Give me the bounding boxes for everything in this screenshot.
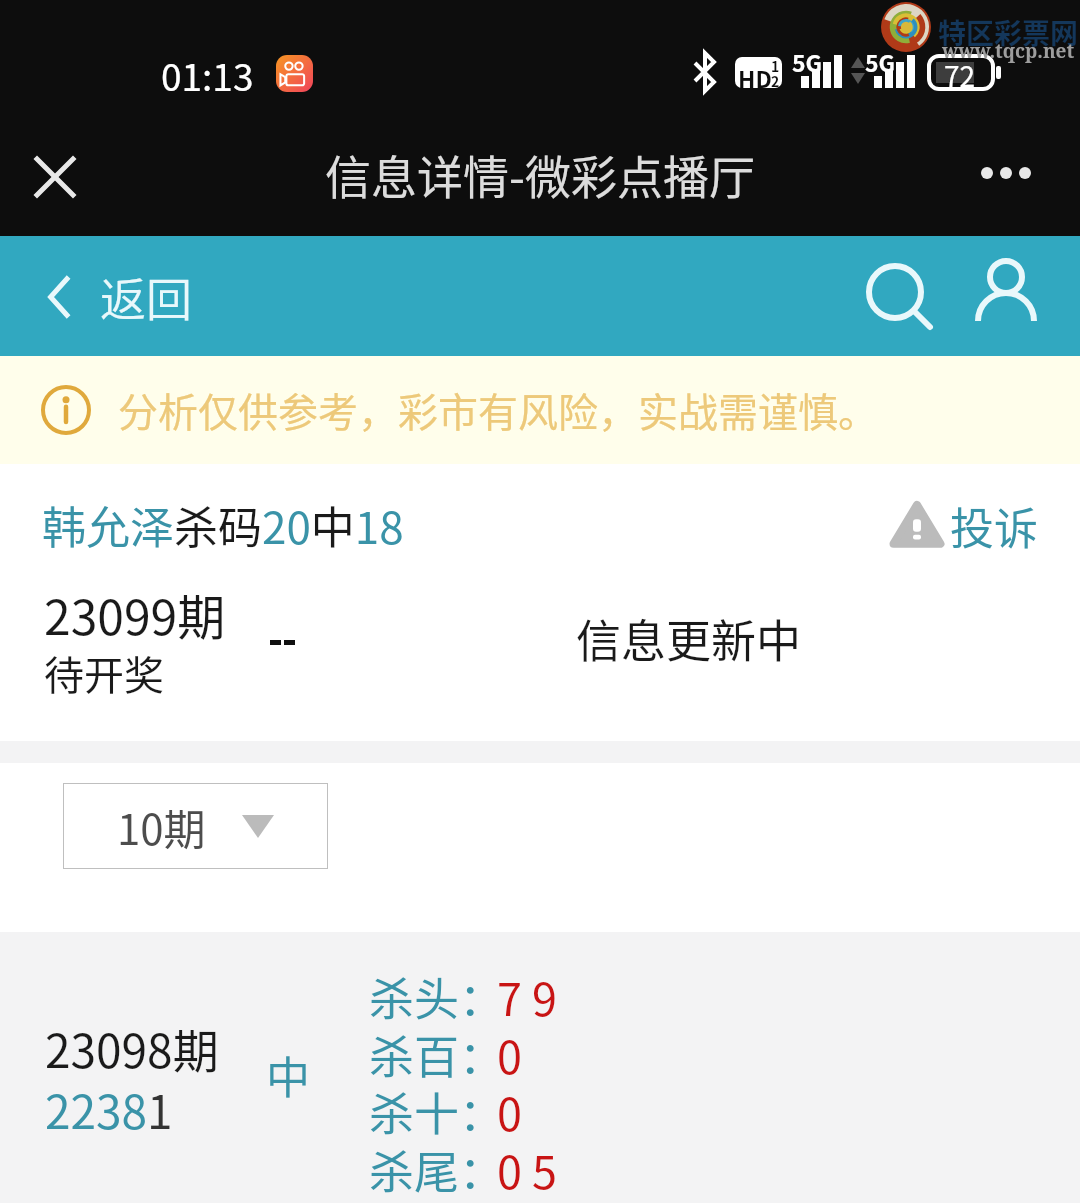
staticText: 01:13 bbox=[161, 48, 254, 102]
staticText: 信息详情-微彩点播厅 bbox=[325, 141, 755, 208]
button[interactable]: Search bbox=[851, 252, 939, 340]
button[interactable]: Account bbox=[962, 252, 1050, 340]
staticText: 1 bbox=[771, 56, 780, 76]
staticText: 杀头： bbox=[369, 964, 505, 1029]
staticText: 0 bbox=[497, 1022, 522, 1087]
staticText: 5G bbox=[865, 45, 896, 78]
staticText: 23098期 bbox=[45, 1015, 219, 1082]
staticText: 杀百： bbox=[369, 1022, 505, 1087]
staticText: 0 bbox=[497, 1079, 522, 1144]
button[interactable]: 返回 bbox=[44, 263, 192, 330]
button[interactable]: More options bbox=[967, 138, 1045, 216]
staticText: 杀十： bbox=[369, 1079, 505, 1144]
staticText: 7 9 bbox=[497, 964, 558, 1029]
button[interactable]: 10期 bbox=[63, 783, 328, 869]
button[interactable]: Close bbox=[20, 142, 90, 212]
staticText: 10期 bbox=[117, 796, 206, 857]
staticText: www.tqcp.net bbox=[942, 38, 1075, 64]
staticText: 信息更新中 bbox=[576, 606, 802, 671]
staticText: 22381 bbox=[45, 1076, 173, 1143]
staticText: 待开奖 bbox=[44, 644, 164, 702]
staticText: 特区彩票网 bbox=[938, 12, 1079, 53]
staticText: 分析仅供参考，彩市有风险，实战需谨慎。 bbox=[118, 381, 878, 439]
staticText: 23099期 bbox=[44, 579, 226, 649]
button[interactable]: 投诉 bbox=[892, 494, 1038, 558]
staticText: 72 bbox=[944, 55, 976, 96]
staticText: 杀尾： bbox=[369, 1137, 505, 1202]
staticText: 韩允泽杀码20中18 bbox=[42, 493, 404, 557]
staticText: HD bbox=[738, 61, 772, 94]
staticText: 5G bbox=[792, 45, 823, 78]
staticText: 投诉 bbox=[950, 494, 1038, 558]
staticText: 2 bbox=[771, 71, 780, 91]
button[interactable]: 23098期 bbox=[0, 932, 1080, 1203]
staticText: 0 5 bbox=[497, 1137, 558, 1202]
staticText: 中 bbox=[266, 1043, 310, 1107]
staticText: 返回 bbox=[100, 263, 192, 330]
